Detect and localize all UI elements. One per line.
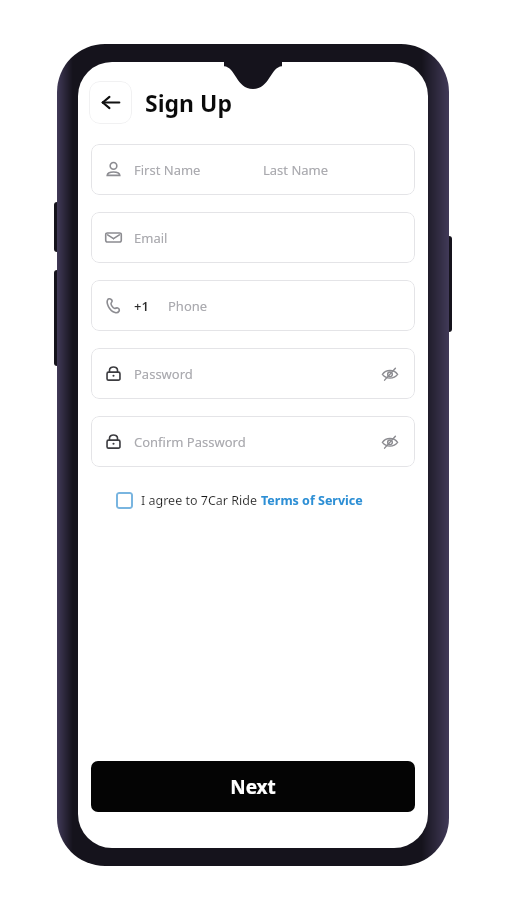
staticText: Email [134,229,168,247]
button[interactable]: Show password [378,430,402,454]
staticText: Password [134,365,193,383]
button[interactable]: First Name [91,144,415,195]
staticText: Last Name [263,161,329,179]
button[interactable]: +1 [91,280,415,331]
button[interactable]: Terms of Service [261,492,363,509]
button[interactable]: Password [91,348,415,399]
staticText: Confirm Password [134,433,246,451]
button[interactable]: Confirm Password [91,416,415,467]
staticText: Terms of Service [261,492,363,509]
staticText: +1 [134,297,149,315]
button[interactable]: I agree to terms [116,492,133,509]
staticText: Next [230,774,276,800]
button[interactable]: Back [89,81,132,124]
staticText: First Name [134,161,201,179]
button[interactable]: Next [91,761,415,812]
button[interactable]: Email [91,212,415,263]
staticText: I agree to 7Car Ride [141,492,261,509]
button[interactable]: Show password [378,362,402,386]
staticText: Phone [168,297,208,315]
staticText: Sign Up [145,87,232,118]
